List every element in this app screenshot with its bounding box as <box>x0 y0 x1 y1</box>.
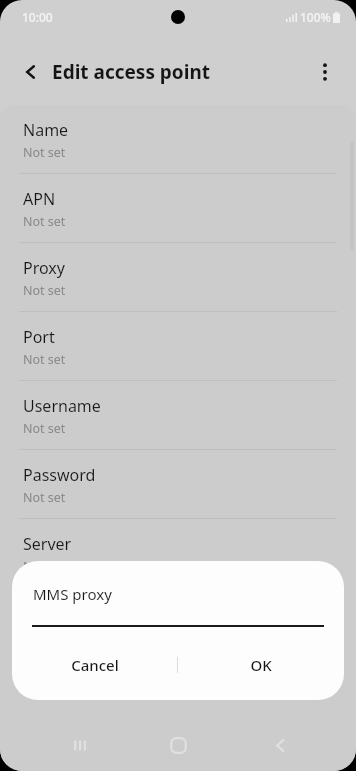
staticText: MMS proxy <box>33 584 112 604</box>
button[interactable]: Navigate up <box>14 55 48 89</box>
staticText: Port <box>23 326 55 348</box>
staticText: Not set <box>23 213 66 230</box>
button[interactable]: Proxy <box>0 243 356 311</box>
staticText: Username <box>23 395 101 417</box>
staticText: APN <box>23 188 56 210</box>
staticText: Not set <box>23 282 66 299</box>
staticText: Not set <box>23 489 66 506</box>
button[interactable]: More options <box>306 53 344 91</box>
staticText: 100% <box>300 9 331 25</box>
staticText: Not set <box>23 351 66 368</box>
staticText: Password <box>23 464 96 486</box>
button[interactable]: Server <box>0 519 356 587</box>
staticText: OK <box>250 655 272 675</box>
button[interactable]: Recents <box>62 727 98 763</box>
button[interactable]: Home <box>159 726 197 764</box>
staticText: Not set <box>23 558 66 575</box>
staticText: Not set <box>23 420 66 437</box>
staticText: Server <box>23 533 72 555</box>
button[interactable]: OK <box>178 644 344 686</box>
button[interactable]: Password <box>0 450 356 518</box>
button[interactable]: APN <box>0 174 356 242</box>
button[interactable]: Cancel <box>12 644 177 686</box>
staticText: Edit access point <box>52 59 211 85</box>
button[interactable]: Name <box>0 105 356 173</box>
button[interactable]: Port <box>0 312 356 380</box>
staticText: Cancel <box>71 655 119 675</box>
staticText: 10:00 <box>22 9 53 25</box>
staticText: Proxy <box>23 257 65 279</box>
button[interactable]: Username <box>0 381 356 449</box>
button[interactable]: Back <box>262 727 298 763</box>
staticText: Not set <box>23 144 66 161</box>
staticText: Name <box>23 119 69 141</box>
